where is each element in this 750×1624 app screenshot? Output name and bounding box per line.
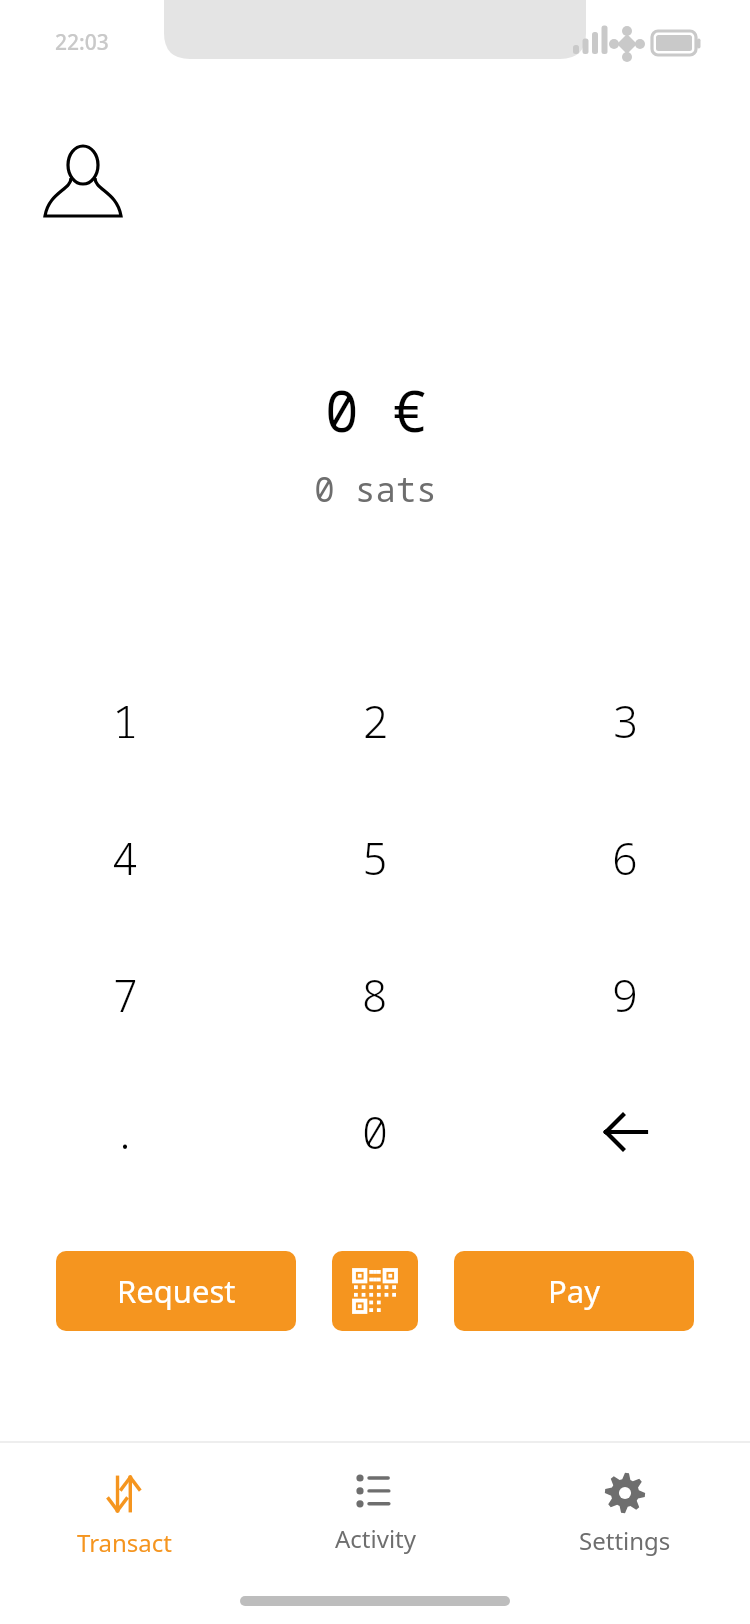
staticText: 9 xyxy=(611,964,639,1025)
staticText: 0 € xyxy=(325,372,426,448)
button[interactable]: Activity xyxy=(250,1460,500,1570)
staticText: Settings xyxy=(579,1524,671,1557)
button[interactable]: Transact xyxy=(0,1460,250,1570)
button[interactable]: Scan QR code xyxy=(332,1251,418,1331)
button[interactable]: 7 xyxy=(0,926,250,1063)
button[interactable]: Settings xyxy=(500,1460,750,1570)
button[interactable]: . xyxy=(0,1063,250,1200)
button[interactable]: 1 xyxy=(0,652,250,789)
staticText: 2 xyxy=(361,690,389,751)
staticText: Request xyxy=(117,1270,236,1312)
button[interactable]: 3 xyxy=(500,652,750,789)
button[interactable]: 2 xyxy=(250,652,500,789)
staticText: 6 xyxy=(611,827,639,888)
staticText: Transact xyxy=(77,1526,173,1559)
staticText: . xyxy=(111,1101,139,1162)
other: Backspace xyxy=(598,1105,652,1159)
button[interactable]: Backspace xyxy=(500,1063,750,1200)
staticText: 22:03 xyxy=(55,28,109,57)
button[interactable]: 9 xyxy=(500,926,750,1063)
staticText: 1 xyxy=(111,690,139,751)
button[interactable]: 6 xyxy=(500,789,750,926)
staticText: 8 xyxy=(361,964,389,1025)
staticText: 0 sats xyxy=(314,466,437,512)
button[interactable]: Profile xyxy=(52,128,114,190)
button[interactable]: Request xyxy=(56,1251,296,1331)
staticText: Pay xyxy=(548,1270,600,1312)
staticText: 7 xyxy=(111,964,139,1025)
button[interactable]: 8 xyxy=(250,926,500,1063)
staticText: 5 xyxy=(361,827,389,888)
button[interactable]: 0 xyxy=(250,1063,500,1200)
button[interactable]: 5 xyxy=(250,789,500,926)
staticText: 4 xyxy=(111,827,139,888)
staticText: 3 xyxy=(611,690,639,751)
button[interactable]: Pay xyxy=(454,1251,694,1331)
button[interactable]: 4 xyxy=(0,789,250,926)
staticText: 0 xyxy=(361,1101,389,1162)
staticText: Activity xyxy=(335,1522,416,1555)
